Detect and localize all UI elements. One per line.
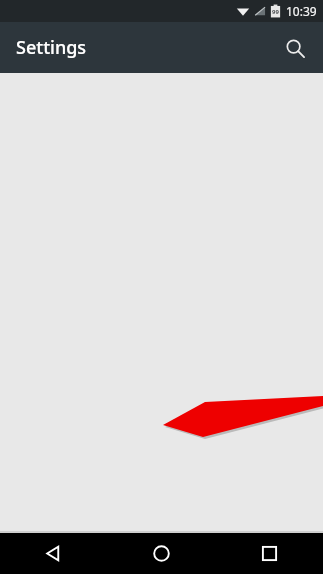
- staticText: 99: [272, 8, 279, 16]
- staticText: Settings: [16, 35, 87, 60]
- button[interactable]: Back: [0, 533, 107, 574]
- staticText: 10:39: [286, 3, 317, 19]
- button[interactable]: Search: [275, 28, 315, 68]
- button[interactable]: Home: [107, 533, 215, 574]
- button[interactable]: About phone: [0, 383, 323, 449]
- button[interactable]: Recent apps: [215, 533, 323, 574]
